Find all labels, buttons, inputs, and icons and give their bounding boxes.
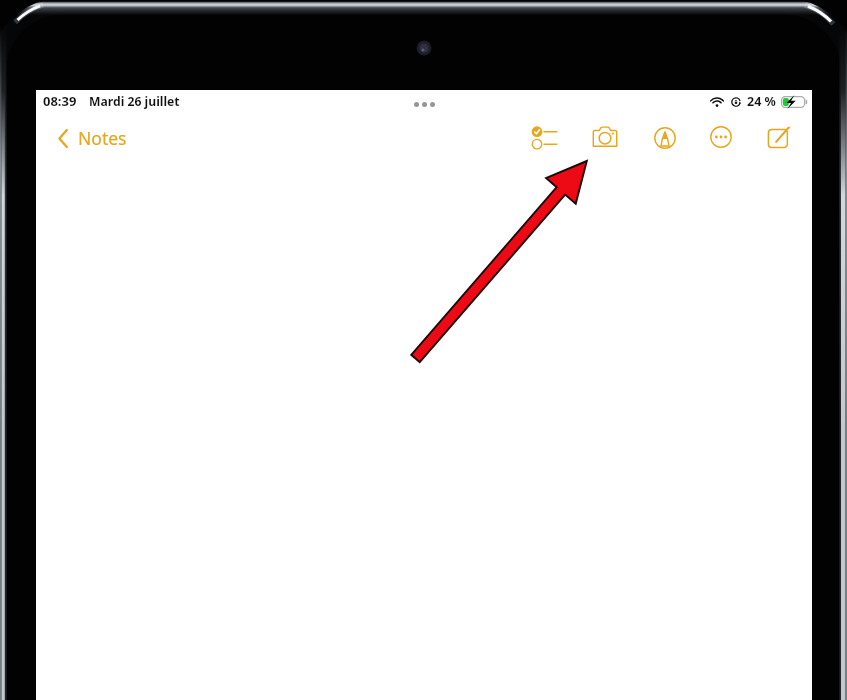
button[interactable]: New note	[759, 117, 799, 157]
staticText: 24 %	[747, 93, 776, 110]
button[interactable]: Notes	[57, 126, 127, 150]
button[interactable]: Camera	[585, 117, 625, 157]
staticText: Notes	[78, 126, 127, 150]
staticText: Mardi 26 juillet	[89, 93, 180, 110]
button[interactable]: More	[701, 117, 741, 157]
button[interactable]: Markup	[645, 118, 685, 158]
button[interactable]: Checklist	[524, 118, 564, 158]
staticText: 08:39	[43, 92, 77, 110]
